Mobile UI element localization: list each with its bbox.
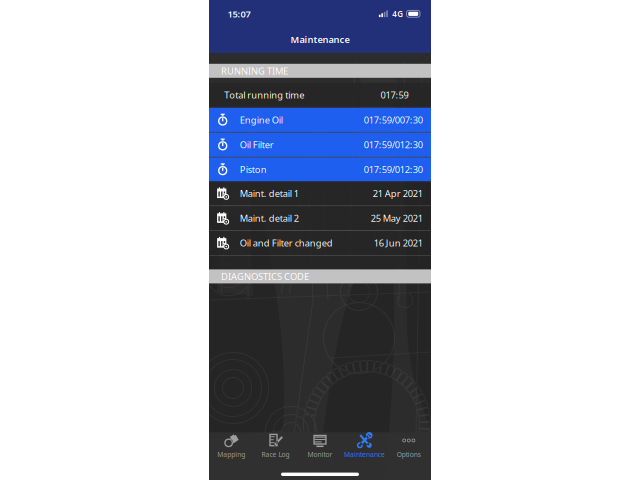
button[interactable]: Maint. detail 1	[209, 181, 431, 205]
staticText: Piston	[240, 163, 267, 176]
staticText: Oil and Filter changed	[240, 237, 333, 249]
staticText: Engine Oil	[240, 114, 283, 126]
button[interactable]: Oil and Filter changed	[209, 231, 431, 255]
staticText: Options	[397, 450, 421, 459]
staticText: 4G	[392, 8, 403, 19]
button[interactable]: Piston	[209, 157, 431, 181]
staticText: Maintenance	[290, 33, 349, 46]
button[interactable]: Maintenance	[342, 432, 387, 464]
staticText: DIAGNOSTICS CODE	[221, 270, 309, 283]
staticText: 21 Apr 2021	[373, 187, 423, 200]
button[interactable]: Engine Oil	[209, 108, 431, 132]
staticText: Race Log	[262, 450, 290, 459]
staticText: Maint. detail 1	[240, 187, 299, 200]
staticText: Total running time	[224, 89, 304, 101]
staticText: 017:59/007:30	[364, 114, 423, 126]
staticText: RUNNING TIME	[221, 65, 288, 77]
button[interactable]: Maint. detail 2	[209, 206, 431, 230]
staticText: Oil Filter	[240, 138, 274, 151]
staticText: Maintenance	[344, 450, 385, 459]
button[interactable]: Race Log	[253, 432, 298, 464]
staticText: 017:59	[380, 89, 408, 101]
staticText: 017:59/012:30	[364, 163, 423, 176]
staticText: 15:07	[228, 8, 251, 20]
button[interactable]: Options	[387, 432, 431, 464]
staticText: 017:59/012:30	[364, 138, 423, 151]
button[interactable]: Total running time	[209, 83, 431, 107]
button[interactable]: Mapping	[209, 432, 253, 464]
button[interactable]: Monitor	[298, 432, 342, 464]
staticText: 25 May 2021	[371, 212, 423, 224]
staticText: Mapping	[217, 450, 245, 459]
staticText: Maint. detail 2	[240, 212, 299, 224]
button[interactable]: Oil Filter	[209, 133, 431, 157]
staticText: Monitor	[307, 450, 332, 459]
staticText: 16 Jun 2021	[374, 237, 423, 249]
